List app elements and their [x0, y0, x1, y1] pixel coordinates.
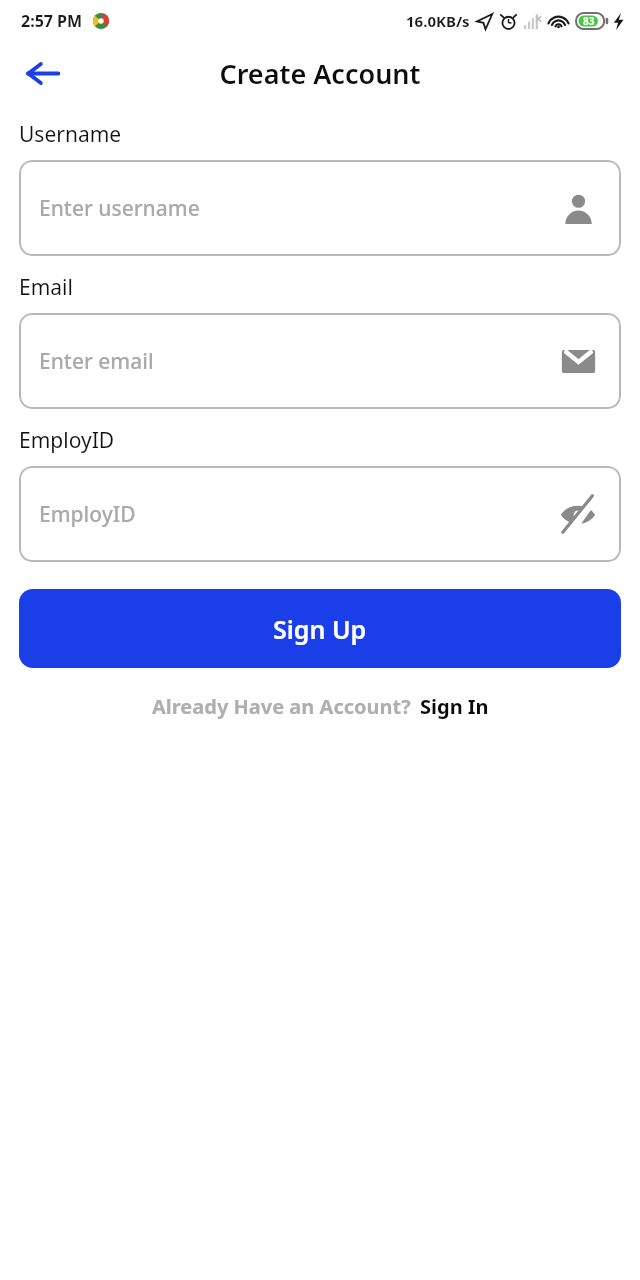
button[interactable]: Enter email	[19, 313, 621, 409]
staticText: Enter email	[39, 347, 154, 376]
staticText: 16.0KB/s	[406, 11, 470, 31]
staticText: Email	[19, 273, 73, 302]
staticText: EmployID	[39, 500, 136, 529]
button[interactable]: Enter username	[19, 160, 621, 256]
staticText: EmployID	[19, 426, 115, 455]
button[interactable]: Sign Up	[19, 589, 621, 668]
staticText: Sign In	[420, 693, 489, 720]
staticText: Enter username	[39, 194, 200, 223]
staticText: Sign Up	[273, 612, 367, 646]
staticText: Create Account	[219, 55, 421, 92]
staticText: Already Have an Account?	[152, 693, 411, 720]
button[interactable]: Sign In	[420, 693, 489, 720]
staticText: 83	[583, 14, 595, 28]
button[interactable]: Back	[16, 47, 68, 99]
staticText: Username	[19, 120, 122, 149]
staticText: 2:57 PM	[21, 10, 83, 32]
button[interactable]: EmployID	[19, 466, 621, 562]
